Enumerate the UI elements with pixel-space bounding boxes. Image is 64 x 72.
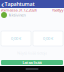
staticText: 0,00 € (11, 36, 21, 41)
staticText: Tapahtumat (4, 0, 34, 8)
staticText: Aktiivinen (8, 12, 25, 18)
staticText: Päättyy (51, 7, 63, 13)
staticText: ‹ (1, 0, 4, 10)
button[interactable]: Lataa lisää (1, 60, 63, 65)
staticText: Voimassa 31.12.2024 (0, 7, 36, 13)
staticText: Lataa lisää (22, 60, 41, 65)
staticText: 0,00 € (43, 36, 53, 41)
button[interactable]: Back (0, 0, 4, 8)
